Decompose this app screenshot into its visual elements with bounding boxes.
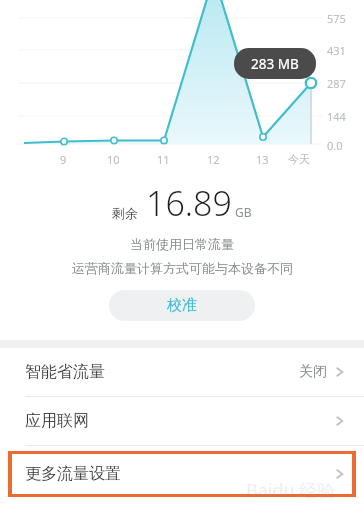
staticText: 16.89: [146, 180, 232, 226]
staticText: 12: [207, 152, 220, 167]
staticText: 11: [157, 152, 170, 167]
button[interactable]: 应用联网: [0, 397, 364, 445]
staticText: 431: [327, 43, 346, 58]
staticText: 144: [327, 109, 346, 124]
other: Open 应用联网: [335, 414, 344, 428]
staticText: 13: [256, 152, 269, 167]
staticText: 9: [60, 152, 67, 167]
staticText: 今天: [288, 152, 310, 166]
staticText: 更多流量设置: [25, 464, 121, 484]
staticText: 智能省流量: [25, 362, 105, 382]
staticText: Baidu 经验: [246, 478, 336, 503]
staticText: 关闭: [299, 363, 327, 381]
button[interactable]: 校准: [109, 290, 255, 321]
staticText: 剩余: [112, 205, 138, 221]
staticText: 10: [107, 152, 120, 167]
button[interactable]: 更多流量设置: [0, 464, 364, 484]
staticText: 0.0: [327, 138, 343, 153]
staticText: GB: [235, 204, 252, 220]
staticText: 应用联网: [25, 411, 89, 431]
other: Open 智能省流量: [335, 365, 344, 379]
staticText: 运营商流量计算方式可能与本设备不同: [72, 260, 293, 276]
staticText: 287: [327, 76, 346, 91]
other: Open 更多流量设置: [335, 467, 344, 481]
staticText: 当前使用日常流量: [130, 236, 234, 252]
staticText: 575: [327, 11, 346, 26]
staticText: 283 MB: [251, 55, 299, 73]
button[interactable]: 智能省流量: [0, 348, 364, 396]
staticText: 校准: [167, 296, 197, 315]
